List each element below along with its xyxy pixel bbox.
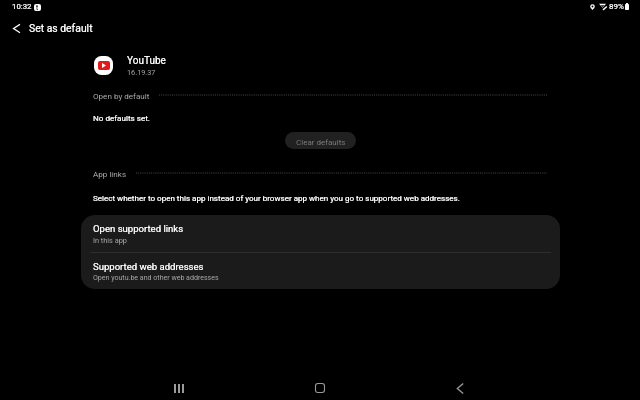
staticText: App links [93, 169, 127, 178]
button[interactable]: Recent apps [158, 374, 200, 400]
button[interactable]: Open supported links [81, 215, 560, 252]
staticText: Open supported links [93, 223, 184, 234]
staticText: YouTube [127, 55, 166, 67]
staticText: Select whether to open this app instead … [93, 194, 460, 203]
staticText: 16.19.37 [127, 68, 156, 77]
staticText: Set as default [29, 22, 93, 34]
staticText: 89% [609, 2, 624, 11]
staticText: In this app [93, 236, 127, 245]
button[interactable]: Home [299, 374, 341, 400]
button[interactable]: Back [4, 17, 28, 39]
staticText: Open youtu.be and other web addresses [93, 273, 219, 281]
staticText: t [36, 4, 39, 11]
button[interactable]: Back [439, 374, 481, 400]
staticText: Supported web addresses [93, 261, 204, 272]
button[interactable]: Clear defaults [285, 132, 356, 149]
staticText: Clear defaults [296, 138, 346, 147]
staticText: 10:32 [12, 2, 32, 11]
button[interactable]: Supported web addresses [81, 253, 560, 289]
staticText: Open by default [93, 91, 150, 100]
staticText: No defaults set. [93, 113, 150, 122]
